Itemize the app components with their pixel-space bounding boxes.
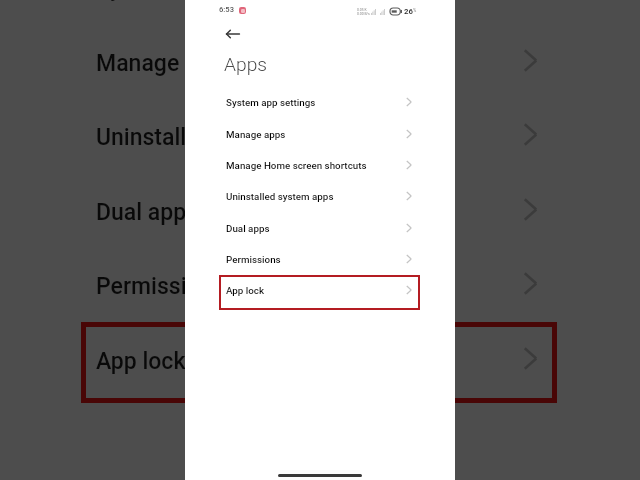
staticText: 0.05 K 0.00 B/s [357,8,370,16]
button[interactable]: Manage Home screen shortcuts [185,150,455,181]
button[interactable]: Permissions [185,244,455,275]
button[interactable]: App lock [185,275,455,306]
staticText: Dual apps [96,199,199,226]
button[interactable]: Dual apps [185,213,455,244]
staticText: 6:53 [219,5,234,14]
staticText: Apps [224,53,267,76]
staticText: System app settings [226,97,316,108]
staticText: % [413,8,417,13]
staticText: Permissions [226,254,281,265]
staticText: Manage apps [226,129,286,140]
staticText: System app settings [96,0,306,2]
button[interactable]: System app settings [185,87,455,118]
button[interactable]: Back [219,20,247,48]
button[interactable]: Manage apps [185,119,455,150]
staticText: Manage apps [96,50,236,77]
staticText: Permissions [96,273,225,300]
staticText: 26 [404,7,413,16]
staticText: Dual apps [226,223,270,234]
staticText: App lock [96,348,186,375]
staticText: Manage Home screen shortcuts [226,160,367,171]
staticText: App lock [226,285,265,296]
staticText: Uninstalled system apps [226,191,334,202]
button[interactable]: Uninstalled system apps [185,181,455,212]
staticText: Uninstalled system apps [96,124,349,151]
